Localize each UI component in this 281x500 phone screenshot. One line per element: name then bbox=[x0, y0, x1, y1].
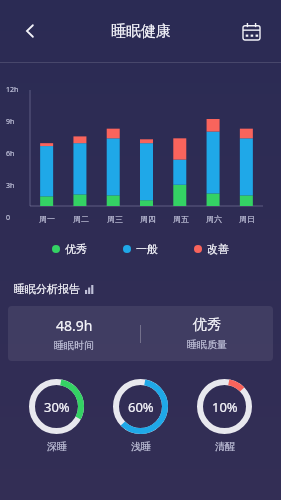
button[interactable]: Back bbox=[10, 11, 50, 51]
staticText: 周日 bbox=[239, 214, 255, 224]
staticText: 一般 bbox=[136, 242, 158, 256]
staticText: 60% bbox=[128, 398, 154, 416]
staticText: 改善 bbox=[207, 242, 229, 256]
staticText: 0 bbox=[6, 213, 11, 223]
staticText: 睡眠分析报告 bbox=[14, 282, 80, 296]
button[interactable]: 睡眠分析报告 bbox=[14, 282, 281, 296]
staticText: 周六 bbox=[206, 214, 222, 224]
staticText: 睡眠质量 bbox=[187, 338, 227, 351]
staticText: 30% bbox=[44, 398, 70, 416]
staticText: 优秀 bbox=[65, 242, 87, 256]
button[interactable]: 60% bbox=[113, 379, 168, 453]
staticText: 12h bbox=[6, 85, 19, 95]
staticText: 睡眠健康 bbox=[111, 22, 171, 41]
button[interactable]: Calendar bbox=[231, 11, 271, 51]
staticText: 浅睡 bbox=[131, 440, 151, 453]
staticText: 6h bbox=[6, 149, 15, 159]
staticText: 48.9h bbox=[56, 316, 93, 335]
button[interactable]: 30% bbox=[29, 379, 84, 453]
staticText: 周一 bbox=[39, 214, 55, 224]
staticText: 3h bbox=[6, 181, 15, 191]
staticText: 周三 bbox=[107, 214, 123, 224]
staticText: 10% bbox=[212, 398, 238, 416]
staticText: 深睡 bbox=[47, 440, 67, 453]
staticText: 9h bbox=[6, 117, 15, 127]
staticText: 周二 bbox=[73, 214, 89, 224]
staticText: 优秀 bbox=[193, 316, 221, 334]
staticText: 周四 bbox=[140, 214, 156, 224]
button[interactable]: 10% bbox=[197, 379, 252, 453]
button[interactable]: 48.9h bbox=[8, 306, 273, 361]
staticText: 周五 bbox=[173, 214, 189, 224]
staticText: 清醒 bbox=[215, 440, 235, 453]
staticText: 睡眠时间 bbox=[54, 339, 94, 352]
